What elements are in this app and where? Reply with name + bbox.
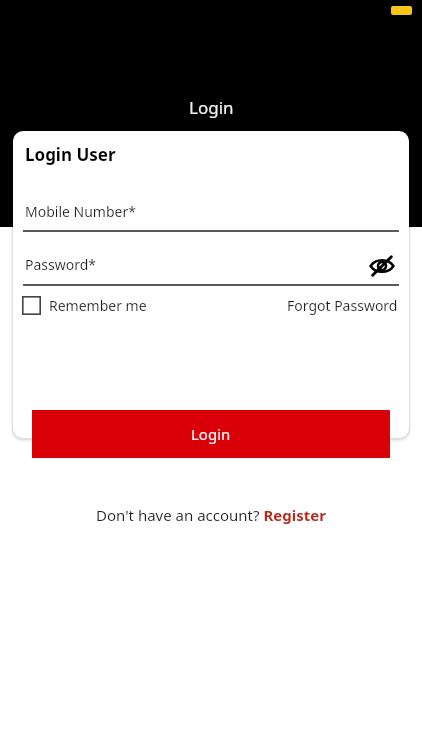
button[interactable]: Forgot Password: [287, 296, 398, 315]
staticText: Mobile Number*: [25, 202, 136, 221]
staticText: Remember me: [49, 296, 147, 315]
staticText: Password*: [25, 255, 97, 274]
button[interactable]: Login: [32, 410, 390, 458]
button[interactable]: Remember me: [22, 296, 147, 315]
button[interactable]: Don't have an account? Register: [96, 505, 326, 525]
staticText: Login: [191, 424, 231, 444]
staticText: Login: [189, 96, 234, 119]
staticText: Forgot Password: [287, 296, 398, 315]
button[interactable]: Show password: [365, 249, 399, 283]
staticText: Don't have an account? Register: [96, 505, 326, 525]
staticText: Login User: [25, 143, 116, 166]
